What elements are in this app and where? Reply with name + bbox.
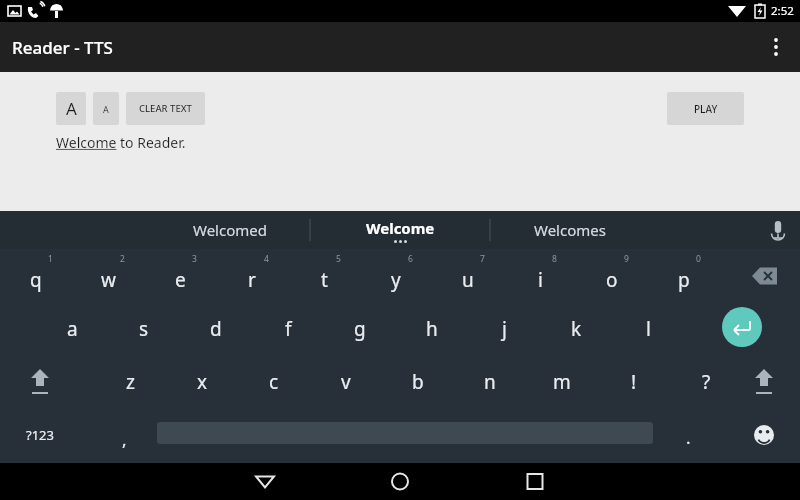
- staticText: A: [66, 97, 77, 120]
- button[interactable]: 8: [506, 249, 574, 302]
- button[interactable]: More options: [752, 23, 800, 71]
- staticText: Welcomed: [193, 220, 267, 240]
- staticText: Welcomes: [534, 220, 606, 240]
- button[interactable]: CLEAR TEXT: [126, 92, 205, 125]
- staticText: m: [553, 369, 571, 395]
- staticText: l: [646, 316, 651, 342]
- button[interactable]: ?: [672, 355, 740, 408]
- staticText: 2:52: [771, 3, 794, 19]
- button[interactable]: 0: [650, 249, 718, 302]
- button[interactable]: v: [312, 355, 380, 408]
- staticText: h: [426, 316, 438, 342]
- button[interactable]: Enter: [716, 305, 768, 349]
- staticText: v: [341, 369, 351, 395]
- button[interactable]: Backspace: [738, 255, 792, 297]
- staticText: k: [571, 316, 582, 342]
- button[interactable]: Recent apps: [511, 463, 559, 500]
- button[interactable]: Voice input: [756, 211, 800, 249]
- staticText: Welcome to Reader.: [56, 133, 186, 152]
- staticText: ?: [702, 369, 711, 395]
- button[interactable]: 3: [146, 249, 214, 302]
- staticText: a: [67, 316, 78, 342]
- staticText: y: [391, 267, 401, 293]
- staticText: d: [210, 316, 222, 342]
- staticText: t: [321, 267, 328, 293]
- button[interactable]: ,: [96, 414, 152, 456]
- button[interactable]: j: [470, 302, 538, 355]
- staticText: ,: [122, 428, 127, 451]
- button[interactable]: z: [96, 355, 164, 408]
- button[interactable]: l: [614, 302, 682, 355]
- staticText: Reader - TTS: [12, 36, 113, 59]
- button[interactable]: x: [168, 355, 236, 408]
- button[interactable]: 1: [2, 249, 70, 302]
- staticText: !: [631, 369, 637, 395]
- button[interactable]: c: [240, 355, 308, 408]
- button[interactable]: Home: [376, 463, 424, 500]
- button[interactable]: f: [254, 302, 322, 355]
- staticText: w: [101, 267, 116, 293]
- staticText: g: [354, 316, 366, 342]
- button[interactable]: d: [182, 302, 250, 355]
- button[interactable]: h: [398, 302, 466, 355]
- staticText: e: [175, 267, 186, 293]
- button[interactable]: Welcome: [320, 211, 480, 249]
- staticText: 0: [696, 253, 701, 265]
- button[interactable]: Shift: [14, 359, 66, 403]
- staticText: A: [103, 103, 109, 115]
- staticText: q: [30, 267, 42, 293]
- staticText: 8: [552, 253, 557, 265]
- button[interactable]: m: [528, 355, 596, 408]
- staticText: j: [502, 316, 507, 342]
- button[interactable]: Back: [241, 463, 289, 500]
- staticText: u: [462, 267, 474, 293]
- button[interactable]: PLAY: [667, 92, 744, 125]
- staticText: b: [412, 369, 424, 395]
- staticText: r: [248, 267, 256, 293]
- staticText: 7: [480, 253, 485, 265]
- staticText: 9: [624, 253, 629, 265]
- button[interactable]: g: [326, 302, 394, 355]
- button[interactable]: !: [600, 355, 668, 408]
- staticText: n: [484, 369, 496, 395]
- button[interactable]: 4: [218, 249, 286, 302]
- button[interactable]: b: [384, 355, 452, 408]
- staticText: f: [285, 316, 292, 342]
- staticText: 1: [48, 253, 53, 265]
- button[interactable]: k: [542, 302, 610, 355]
- button[interactable]: 9: [578, 249, 646, 302]
- button[interactable]: ?123: [8, 414, 72, 456]
- staticText: 5: [336, 253, 341, 265]
- staticText: CLEAR TEXT: [139, 102, 192, 115]
- staticText: 4: [264, 253, 269, 265]
- staticText: .: [686, 426, 691, 449]
- button[interactable]: n: [456, 355, 524, 408]
- staticText: PLAY: [694, 102, 718, 116]
- staticText: 2: [120, 253, 125, 265]
- button[interactable]: a: [38, 302, 106, 355]
- staticText: c: [269, 369, 279, 395]
- staticText: s: [139, 316, 149, 342]
- button[interactable]: 6: [362, 249, 430, 302]
- staticText: p: [678, 267, 690, 293]
- staticText: 3: [192, 253, 197, 265]
- staticText: z: [126, 369, 135, 395]
- button[interactable]: 5: [290, 249, 358, 302]
- staticText: Welcome: [366, 218, 435, 238]
- button[interactable]: Welcomes: [490, 211, 650, 249]
- staticText: i: [538, 267, 543, 293]
- button[interactable]: Emoji: [740, 414, 788, 456]
- staticText: 6: [408, 253, 413, 265]
- staticText: x: [197, 369, 208, 395]
- button[interactable]: 7: [434, 249, 502, 302]
- staticText: o: [606, 267, 618, 293]
- staticText: ?123: [26, 426, 54, 444]
- button[interactable]: .: [660, 414, 716, 456]
- button[interactable]: 2: [74, 249, 142, 302]
- button[interactable]: A: [56, 92, 86, 125]
- button[interactable]: s: [110, 302, 178, 355]
- button[interactable]: Welcomed: [150, 211, 310, 249]
- button[interactable]: Shift: [738, 359, 790, 403]
- button[interactable]: A: [93, 92, 119, 125]
